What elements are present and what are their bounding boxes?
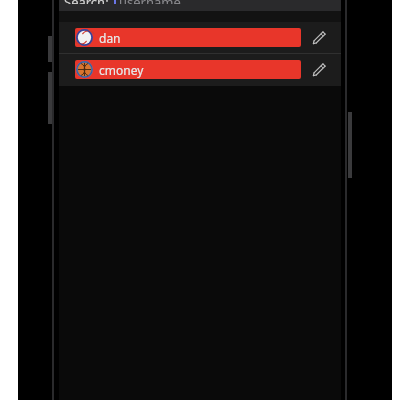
button[interactable]: Edit dan <box>307 26 331 50</box>
button[interactable]: cmoney <box>59 54 341 85</box>
button[interactable]: Edit cmoney <box>307 58 331 82</box>
staticText: username <box>119 0 181 4</box>
staticText: Search: <box>64 0 109 4</box>
button[interactable]: Search: <box>59 0 341 11</box>
button[interactable]: dan <box>59 22 341 53</box>
staticText: dan <box>99 30 121 46</box>
staticText: cmoney <box>99 62 144 78</box>
